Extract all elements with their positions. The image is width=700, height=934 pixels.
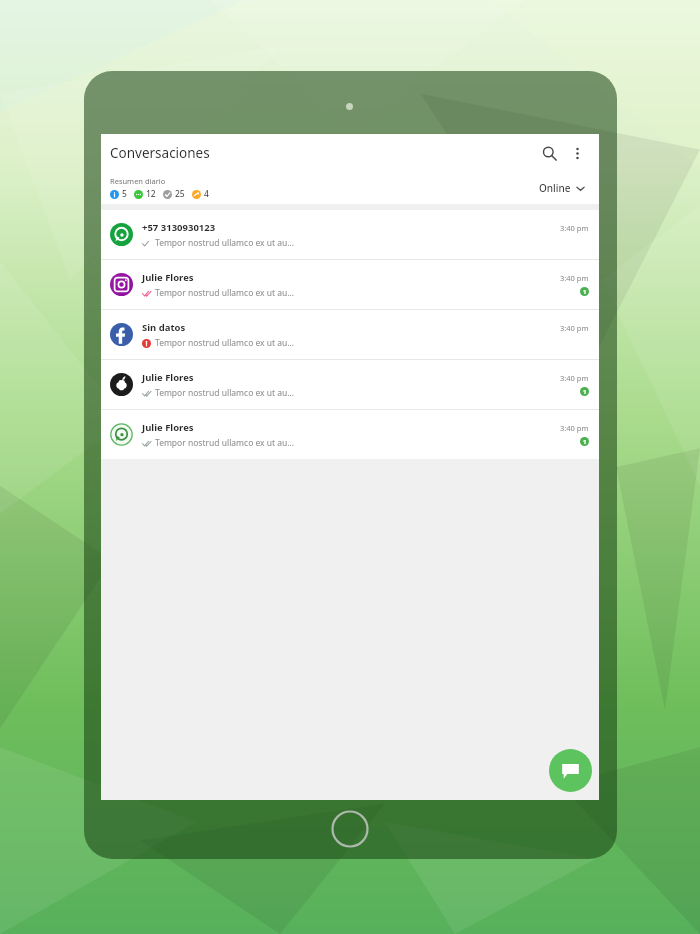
staticText: Tempor nostrud ullamco ex ut au… — [155, 387, 295, 399]
staticText: Julie Flores — [142, 371, 194, 384]
staticText: 1 — [583, 288, 587, 296]
button[interactable]: Julie Flores — [101, 360, 599, 409]
staticText: Sin datos — [142, 321, 186, 334]
staticText: 4 — [204, 188, 209, 200]
staticText: 3:40 pm — [560, 373, 589, 383]
staticText: 1 — [583, 438, 587, 446]
staticText: Tempor nostrud ullamco ex ut au… — [155, 287, 295, 299]
button[interactable]: Sin datos — [101, 310, 599, 359]
staticText: +57 3130930123 — [142, 221, 216, 234]
staticText: Tempor nostrud ullamco ex ut au… — [155, 237, 295, 249]
button[interactable]: Nuevo mensaje — [549, 749, 592, 792]
staticText: Julie Flores — [142, 271, 194, 284]
staticText: 25 — [175, 188, 185, 200]
staticText: Online — [539, 181, 571, 195]
staticText: 12 — [146, 188, 156, 200]
staticText: 3:40 pm — [560, 423, 589, 433]
staticText: 3:40 pm — [560, 223, 589, 233]
staticText: 3:40 pm — [560, 323, 589, 333]
staticText: 3:40 pm — [560, 273, 589, 283]
staticText: Julie Flores — [142, 421, 194, 434]
button[interactable]: Online — [535, 177, 589, 199]
button[interactable]: Buscar — [535, 139, 563, 167]
staticText: 1 — [583, 388, 587, 396]
staticText: 5 — [122, 188, 127, 200]
button[interactable]: Julie Flores — [101, 410, 599, 459]
staticText: Conversaciones — [110, 144, 210, 162]
button[interactable]: +57 3130930123 — [101, 210, 599, 259]
button[interactable]: Julie Flores — [101, 260, 599, 309]
staticText: Tempor nostrud ullamco ex ut au… — [155, 437, 295, 449]
staticText: Tempor nostrud ullamco ex ut au… — [155, 337, 295, 349]
button[interactable]: Más opciones — [563, 139, 591, 167]
staticText: Resumen diario — [110, 176, 166, 186]
